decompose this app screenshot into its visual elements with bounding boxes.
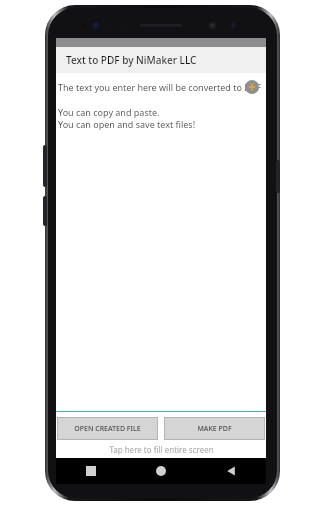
staticText: You can open and save text files! <box>58 118 196 130</box>
button[interactable]: MAKE PDF <box>164 417 265 440</box>
button[interactable]: Back <box>196 458 266 484</box>
button[interactable]: Text to PDF by NiMaker LLC <box>56 47 266 73</box>
other: Bixby <box>43 196 47 226</box>
button[interactable]: Text cursor handle <box>245 80 259 94</box>
button[interactable]: The text you enter here will be converte… <box>56 73 266 411</box>
button[interactable]: OPEN CREATED FILE <box>57 417 158 440</box>
staticText: You can copy and paste. <box>58 106 160 118</box>
staticText: OPEN CREATED FILE <box>74 424 141 434</box>
staticText: Tap here to fill entire screen <box>109 444 214 455</box>
other: Volume <box>43 145 47 187</box>
button[interactable]: Recent apps <box>56 458 126 484</box>
staticText: The text you enter here will be converte… <box>58 81 261 93</box>
staticText: Text to PDF by NiMaker LLC <box>66 53 197 67</box>
button[interactable]: Home <box>126 458 196 484</box>
staticText: MAKE PDF <box>197 424 232 434</box>
button[interactable]: Tap here to fill entire screen <box>56 440 266 458</box>
